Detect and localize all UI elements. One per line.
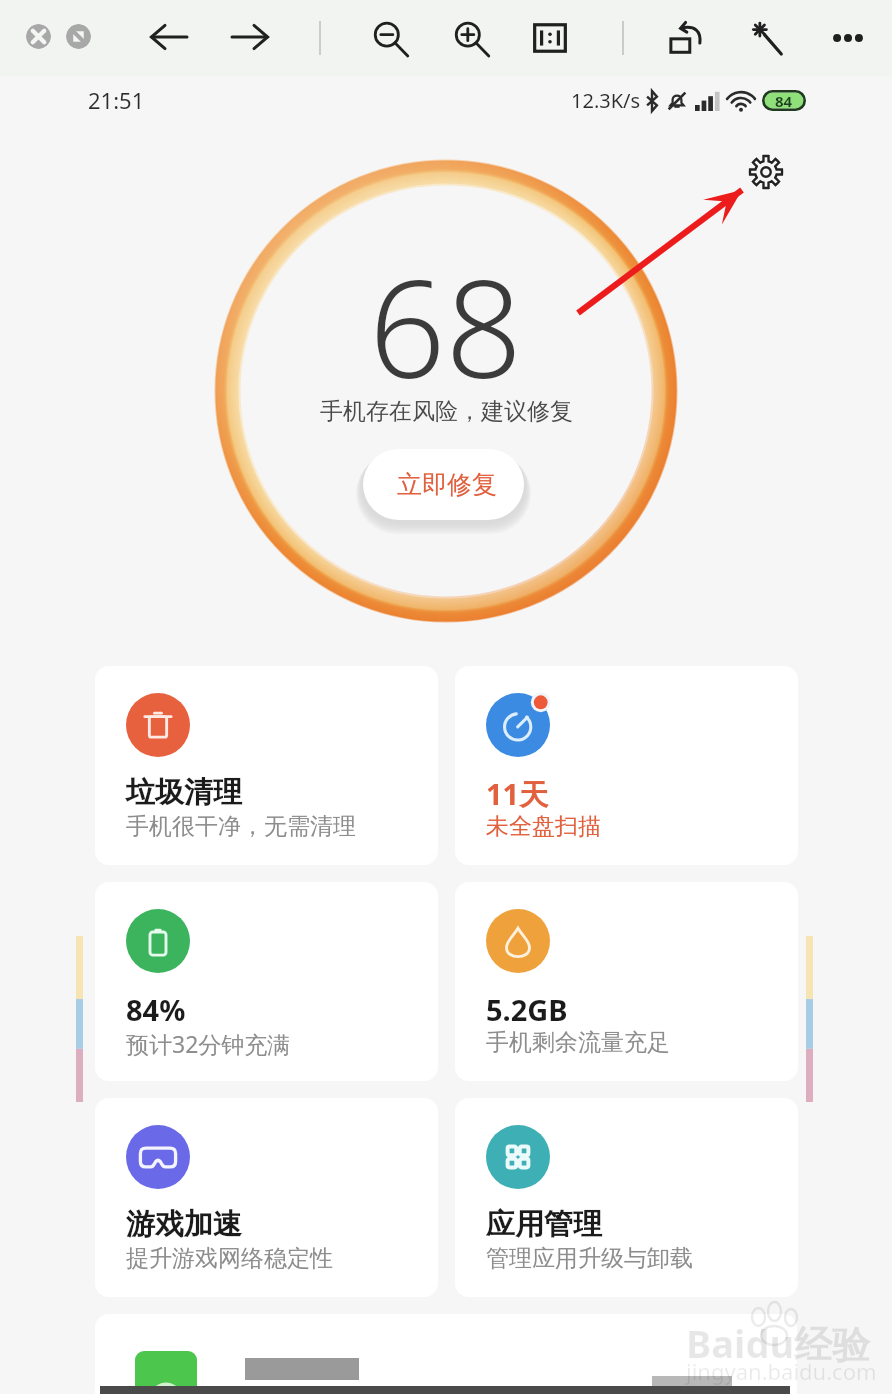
staticText: 5.2GB bbox=[486, 990, 568, 1029]
staticText: jingyan.baidu.com bbox=[686, 1356, 877, 1386]
button[interactable]: Forward bbox=[230, 17, 270, 57]
staticText: 垃圾清理 bbox=[126, 774, 242, 811]
staticText: 未全盘扫描 bbox=[486, 812, 601, 841]
button[interactable]: Zoom out bbox=[370, 17, 412, 59]
button[interactable]: 应用管理 bbox=[455, 1098, 798, 1297]
button[interactable]: Block bbox=[66, 24, 91, 49]
button[interactable]: Enhance bbox=[746, 17, 788, 59]
staticText: 应用管理 bbox=[486, 1206, 602, 1243]
staticText: 12.3K/s bbox=[571, 87, 641, 114]
button[interactable]: 5.2GB bbox=[455, 882, 798, 1081]
staticText: 手机很干净，无需清理 bbox=[126, 812, 356, 841]
staticText: 预计32分钟充满 bbox=[126, 1028, 291, 1059]
button[interactable]: 垃圾清理 bbox=[95, 666, 438, 865]
staticText: 84% bbox=[126, 990, 186, 1029]
button[interactable]: More bbox=[827, 17, 869, 59]
button[interactable]: Back bbox=[149, 17, 189, 57]
button[interactable]: Settings bbox=[747, 153, 785, 191]
staticText: 游戏加速 bbox=[126, 1206, 242, 1243]
staticText: 管理应用升级与卸载 bbox=[486, 1244, 693, 1273]
button[interactable]: Zoom in bbox=[451, 17, 493, 59]
button[interactable]: 84% bbox=[95, 882, 438, 1081]
button[interactable]: Actual size bbox=[529, 17, 571, 59]
staticText: 21:51 bbox=[88, 85, 145, 115]
staticText: 手机剩余流量充足 bbox=[486, 1028, 670, 1057]
staticText: 手机存在风险，建议修复 bbox=[320, 397, 573, 426]
button[interactable] bbox=[95, 1314, 797, 1394]
staticText: 68 bbox=[369, 235, 523, 418]
button[interactable]: 11天 bbox=[455, 666, 798, 865]
staticText: 提升游戏网络稳定性 bbox=[126, 1244, 333, 1273]
button[interactable]: 游戏加速 bbox=[95, 1098, 438, 1297]
button[interactable]: Rotate bbox=[665, 17, 707, 59]
staticText: Baidu经验 bbox=[686, 1317, 871, 1369]
button[interactable]: 立即修复 bbox=[363, 449, 524, 520]
staticText: 11天 bbox=[486, 774, 549, 814]
button[interactable]: Close bbox=[26, 24, 51, 49]
staticText: 84 bbox=[775, 91, 793, 111]
staticText: 立即修复 bbox=[397, 469, 497, 500]
